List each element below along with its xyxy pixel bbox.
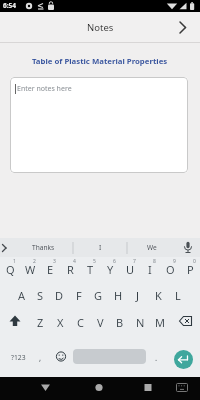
button[interactable]: Q <box>0 257 20 282</box>
button[interactable]: F <box>69 282 88 308</box>
button[interactable] <box>170 308 200 336</box>
button[interactable]: A <box>12 282 31 308</box>
button[interactable]: M <box>150 308 170 336</box>
staticText: 7 <box>133 258 136 265</box>
button[interactable] <box>52 336 70 377</box>
button[interactable]: R <box>60 257 80 282</box>
button[interactable]: T <box>80 257 100 282</box>
staticText: V <box>97 315 104 330</box>
staticText: Enter notes here <box>17 84 72 94</box>
staticText: 4 <box>73 258 76 265</box>
button[interactable]: G <box>88 282 108 308</box>
staticText: 6 <box>113 258 116 265</box>
button[interactable]: Z <box>30 308 50 336</box>
staticText: F <box>76 288 82 303</box>
button[interactable]: X <box>50 308 70 336</box>
staticText: G <box>94 288 103 303</box>
button[interactable]: O <box>160 257 180 282</box>
button[interactable]: P <box>180 257 200 282</box>
staticText: O <box>166 262 175 277</box>
button[interactable]: J <box>128 282 148 308</box>
button[interactable] <box>87 377 110 400</box>
button[interactable]: . <box>149 347 163 367</box>
staticText: 1 <box>13 258 16 265</box>
button[interactable]: V <box>90 308 110 336</box>
staticText: T <box>87 262 94 277</box>
button[interactable]: ?123 <box>4 347 32 367</box>
button[interactable]: W <box>20 257 40 282</box>
staticText: Q <box>6 262 15 277</box>
staticText: C <box>77 315 84 330</box>
button[interactable] <box>136 377 159 400</box>
staticText: 8 <box>153 258 156 265</box>
button[interactable] <box>0 308 30 336</box>
staticText: We <box>147 243 157 252</box>
staticText: Notes <box>87 21 114 34</box>
staticText: 0 <box>193 258 196 265</box>
button[interactable]: S <box>31 282 50 308</box>
button[interactable]: B <box>110 308 130 336</box>
staticText: 9 <box>173 258 176 265</box>
staticText: H <box>114 288 123 303</box>
staticText: K <box>155 288 162 303</box>
staticText: I <box>148 262 152 277</box>
staticText: 2 <box>33 258 36 265</box>
button[interactable]: Thanks <box>14 238 73 257</box>
staticText: , <box>39 352 42 363</box>
button[interactable]: I <box>140 257 160 282</box>
staticText: N <box>136 315 145 330</box>
button[interactable]: Y <box>100 257 120 282</box>
staticText: 6:54 <box>3 1 16 10</box>
button[interactable]: U <box>120 257 140 282</box>
button[interactable] <box>34 377 57 400</box>
button[interactable]: E <box>40 257 60 282</box>
button[interactable]: , <box>33 347 47 367</box>
button[interactable]: I <box>73 238 127 257</box>
staticText: X <box>57 315 64 330</box>
staticText: B <box>116 315 124 330</box>
staticText: ?123 <box>11 353 26 362</box>
staticText: W <box>25 262 36 277</box>
button[interactable]: K <box>148 282 168 308</box>
button[interactable]: Table of Plastic Material Properties <box>0 56 200 67</box>
staticText: E <box>47 262 54 277</box>
staticText: S <box>37 288 44 303</box>
button[interactable]: H <box>108 282 128 308</box>
staticText: Z <box>37 315 44 330</box>
button[interactable]: D <box>50 282 69 308</box>
button[interactable] <box>170 12 200 42</box>
staticText: I <box>99 243 102 252</box>
staticText: U <box>126 262 135 277</box>
staticText: L <box>175 288 181 303</box>
staticText: D <box>55 288 64 303</box>
button[interactable] <box>174 350 193 369</box>
button[interactable]: Enter notes here <box>10 77 188 173</box>
staticText: Table of Plastic Material Properties <box>32 56 168 67</box>
staticText: R <box>67 262 74 277</box>
button[interactable]: C <box>70 308 90 336</box>
button[interactable]: We <box>127 238 176 257</box>
staticText: Y <box>107 262 114 277</box>
staticText: J <box>136 288 140 303</box>
staticText: 3 <box>53 258 56 265</box>
button[interactable] <box>73 349 146 364</box>
staticText: 5 <box>93 258 96 265</box>
staticText: M <box>155 315 165 330</box>
button[interactable]: L <box>168 282 188 308</box>
staticText: A <box>18 288 26 303</box>
button[interactable]: N <box>130 308 150 336</box>
staticText: P <box>187 262 194 277</box>
staticText: Thanks <box>32 243 55 252</box>
button[interactable] <box>171 377 193 399</box>
staticText: . <box>155 352 158 363</box>
